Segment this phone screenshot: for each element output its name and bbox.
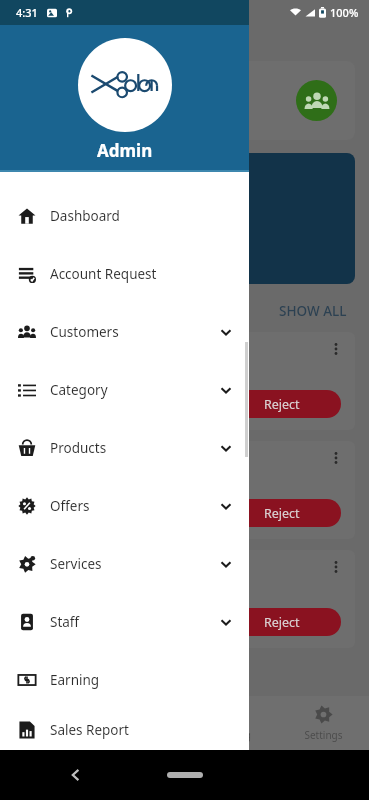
staticText: Booking [212,728,251,742]
staticText: Sales Report [50,721,129,739]
button[interactable]: Account Request [0,245,249,303]
button[interactable]: Customers [0,303,249,361]
staticText: Home [32,728,61,742]
button[interactable]: Reject [223,499,341,527]
button[interactable]: Staff [0,593,249,651]
button[interactable]: Home [0,696,93,750]
button[interactable]: Dashboard [0,187,249,245]
button[interactable]: Reject [223,390,341,418]
button[interactable]: Booking [185,696,277,750]
button[interactable] [14,61,355,140]
staticText: Services [50,555,102,573]
staticText: Reject [264,614,300,631]
staticText: Settings [304,728,343,742]
button[interactable]: More options [329,342,343,356]
staticText: with a simple objective… [30,222,180,240]
button[interactable]: More options [14,550,355,648]
button[interactable]: SHOW ALL [275,298,351,324]
staticText: Reject [264,505,300,522]
button[interactable]: Request [93,696,185,750]
button[interactable]: Sales Report [0,709,249,750]
button[interactable]: Back [68,767,84,783]
staticText: Earning [50,671,100,689]
staticText: SHOW ALL [279,302,347,320]
button[interactable]: Settings [277,696,369,750]
button[interactable]: Earning [0,651,249,709]
staticText: 100% [330,5,359,20]
button[interactable]: Reject [223,608,341,636]
staticText: Category [50,381,108,399]
staticText: Offers [50,497,90,515]
button[interactable]: Admin [0,25,249,172]
button[interactable]: Services [0,535,249,593]
button[interactable]: Products [0,419,249,477]
staticText: Account Request [50,265,157,283]
button[interactable]: More options [329,560,343,574]
staticText: Dashboard [50,207,120,225]
button[interactable]: More options [14,441,355,539]
staticText: Customers [50,323,119,341]
staticText: 4:31 [16,5,38,20]
button[interactable]: More options [329,451,343,465]
staticText: Staff [50,613,80,631]
staticText: Products [50,439,107,457]
button[interactable]: Salon is the world's largest [14,153,355,284]
staticText: Admin [97,139,153,162]
staticText: Request [120,728,159,742]
button[interactable]: Home [167,772,203,778]
staticText: Salon is the world's largest [30,198,193,216]
button[interactable]: Category [0,361,249,419]
button[interactable]: More options [14,332,355,430]
button[interactable]: Offers [0,477,249,535]
staticText: Reject [264,396,300,413]
